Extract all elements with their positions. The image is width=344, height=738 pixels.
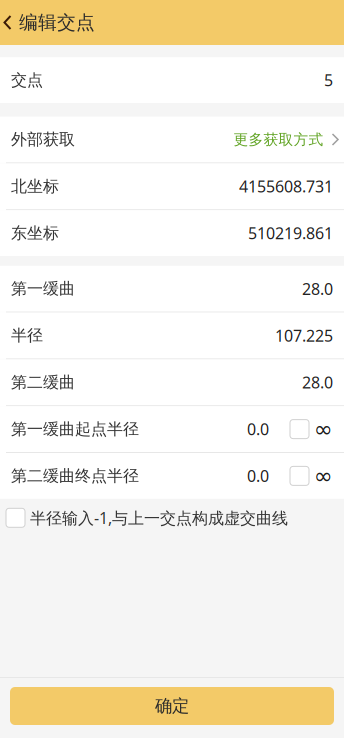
staticText: 交点: [11, 70, 43, 90]
staticText: ∞: [314, 416, 333, 442]
staticText: 0.0: [247, 465, 269, 486]
button[interactable]: Set infinite radius: [269, 453, 333, 499]
button[interactable]: 确定: [10, 687, 334, 725]
staticText: 28.0: [302, 372, 333, 393]
button[interactable]: 第一缓曲: [0, 266, 344, 312]
staticText: ∞: [314, 463, 333, 489]
staticText: 4155608.731: [239, 176, 333, 197]
button[interactable]: 半径: [0, 313, 344, 358]
button[interactable]: 编辑交点: [0, 0, 105, 45]
staticText: 0.0: [247, 418, 269, 440]
staticText: 东坐标: [11, 223, 59, 243]
staticText: 确定: [155, 695, 189, 717]
staticText: 第二缓曲: [11, 372, 75, 392]
button[interactable]: 半径输入-1,与上一交点构成虚交曲线: [0, 500, 344, 536]
button[interactable]: 第二缓曲: [0, 359, 344, 405]
button[interactable]: 北坐标: [0, 163, 344, 209]
staticText: 外部获取: [11, 130, 75, 149]
staticText: 更多获取方式: [233, 130, 323, 148]
staticText: 510219.861: [248, 222, 333, 244]
button[interactable]: Set infinite radius: [269, 406, 333, 452]
staticText: 第一缓曲: [11, 279, 75, 299]
staticText: 第一缓曲起点半径: [11, 419, 139, 439]
staticText: 半径: [11, 326, 43, 345]
staticText: 北坐标: [11, 176, 59, 196]
staticText: 28.0: [302, 278, 333, 299]
button[interactable]: 东坐标: [0, 210, 344, 256]
staticText: 5: [324, 69, 333, 91]
staticText: 第二缓曲终点半径: [11, 466, 139, 486]
button[interactable]: 外部获取: [0, 117, 344, 162]
staticText: 107.225: [275, 325, 333, 346]
button[interactable]: 交点: [0, 57, 344, 103]
staticText: 编辑交点: [19, 11, 95, 34]
staticText: 半径输入-1,与上一交点构成虚交曲线: [30, 507, 288, 528]
